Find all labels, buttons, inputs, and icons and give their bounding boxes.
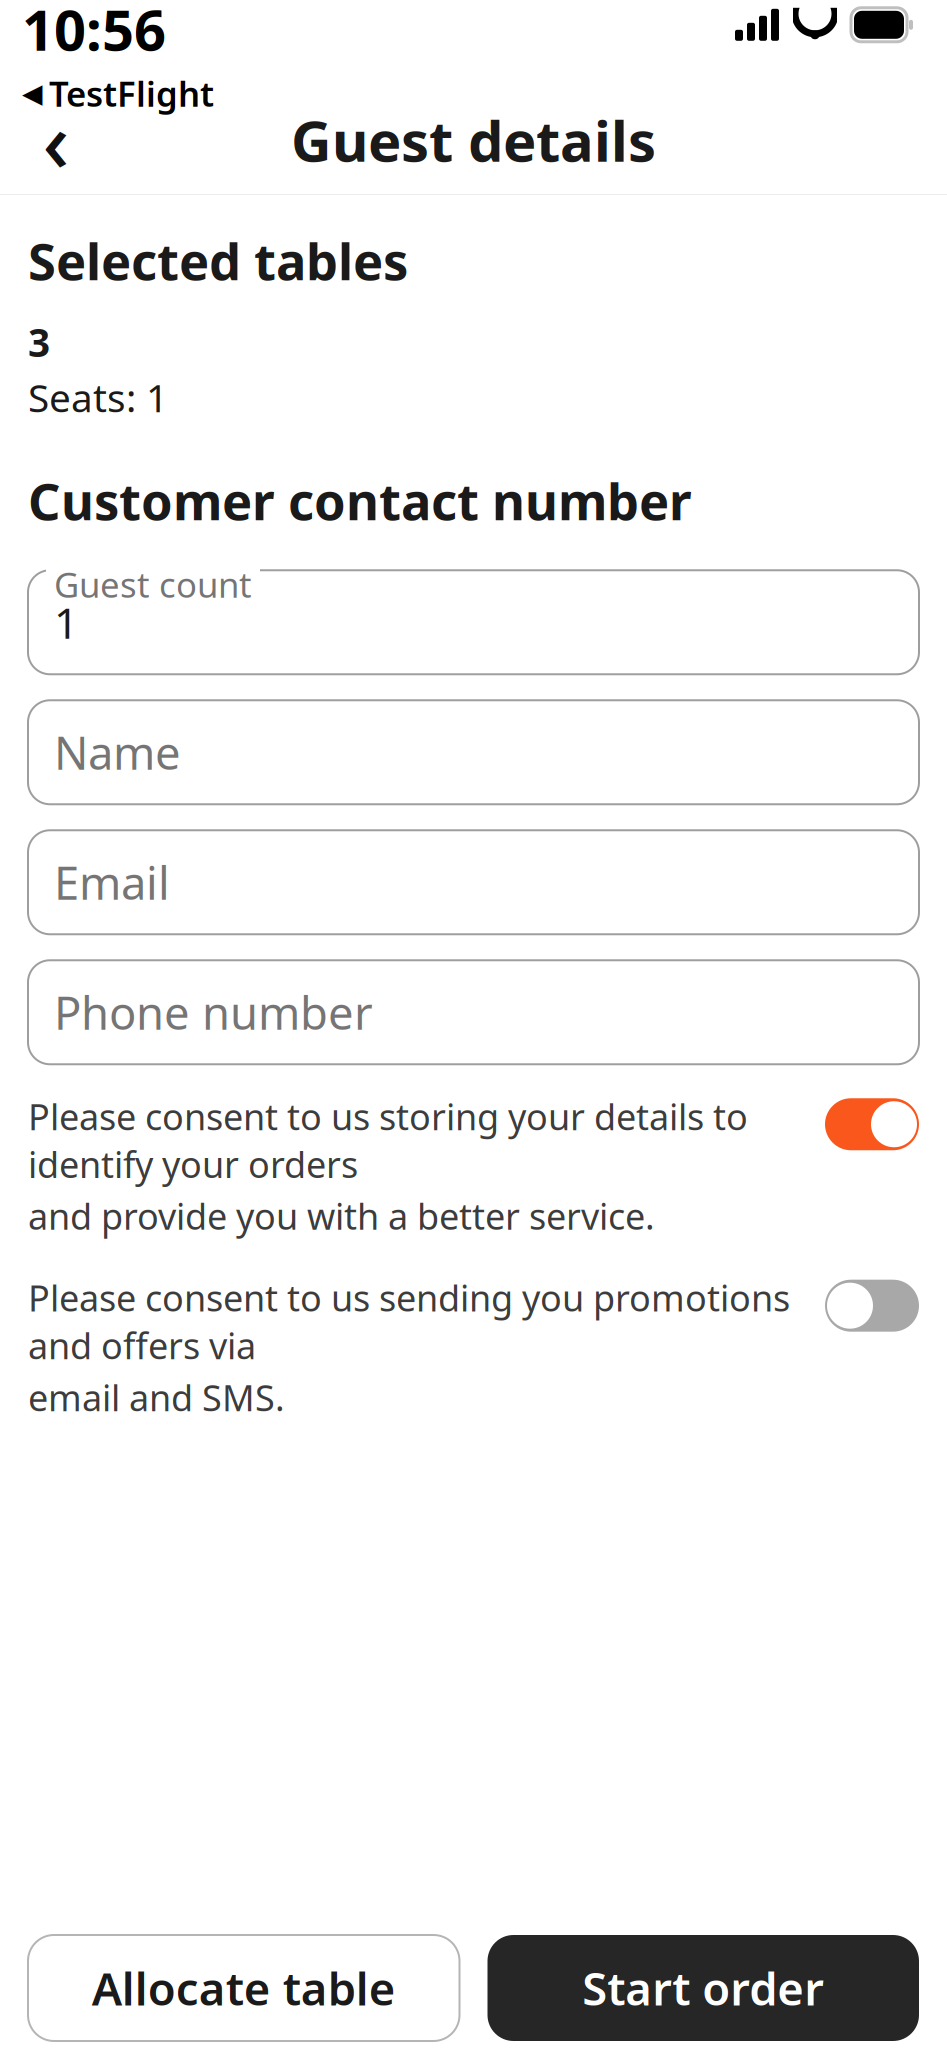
staticText: email and SMS. [28,1373,285,1421]
staticText: Seats: 1 [28,372,168,423]
staticText: Please consent to us storing your detail… [28,1092,748,1188]
staticText: ◀ [22,78,43,108]
staticText: Guest count [54,561,252,607]
staticText: Selected tables [28,227,408,294]
staticText: TestFlight [49,70,214,116]
staticText: and provide you with a better service. [28,1192,655,1240]
staticText: 10:56 [22,0,166,66]
button[interactable]: Consent to promotions, off [825,1280,919,1332]
button[interactable]: Start order [487,1935,919,2041]
staticText: Allocate table [92,1958,396,2018]
staticText: Name [54,722,181,782]
button[interactable]: Back [16,96,96,184]
button[interactable]: Allocate table [28,1935,459,2041]
staticText: Start order [582,1958,824,2018]
staticText: Guest details [291,103,656,177]
button[interactable]: Consent to storing details, on [825,1098,919,1150]
staticText: Customer contact number [28,467,692,534]
staticText: 1 [54,594,78,651]
staticText: ‹ [42,85,69,195]
staticText: Email [54,852,170,912]
staticText: Please consent to us sending you promoti… [28,1274,790,1369]
staticText: Phone number [54,982,373,1042]
staticText: 3 [28,316,50,368]
